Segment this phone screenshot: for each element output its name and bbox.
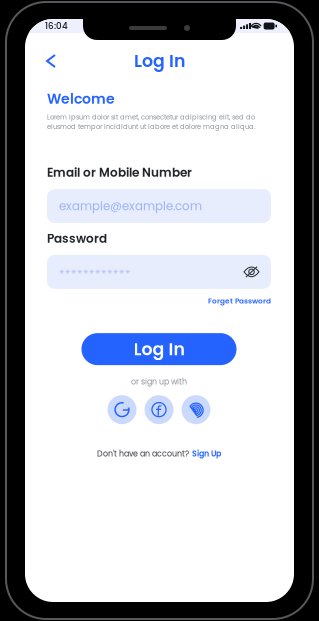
button[interactable]: Sign up with Google (107, 395, 136, 424)
staticText: Log In (134, 49, 185, 73)
button[interactable]: Sign up with fingerprint (181, 395, 210, 424)
button[interactable]: Log In (81, 333, 236, 365)
staticText: ✳✳✳✳✳✳✳✳✳✳✳✳ (59, 268, 131, 276)
staticText: Welcome (47, 89, 115, 109)
staticText: Forget Password (208, 296, 271, 306)
staticText: example@example.com (59, 198, 202, 214)
staticText: Sign Up (192, 448, 221, 459)
button[interactable]: Show password (244, 266, 259, 277)
staticText: Lorem ipsum dolor sit amet, consectetur … (47, 113, 255, 131)
staticText: Password (47, 230, 107, 247)
staticText: or sign up with (131, 376, 187, 387)
staticText: Log In (133, 337, 184, 361)
staticText: 16:04 (45, 20, 68, 32)
button[interactable]: Back (39, 47, 63, 75)
staticText: Don't have an account? (97, 448, 189, 459)
button[interactable]: Forget Password (208, 296, 271, 306)
button[interactable]: Sign up with Facebook (144, 395, 173, 424)
staticText: Email or Mobile Number (47, 164, 192, 181)
button[interactable]: Sign Up (192, 448, 221, 459)
